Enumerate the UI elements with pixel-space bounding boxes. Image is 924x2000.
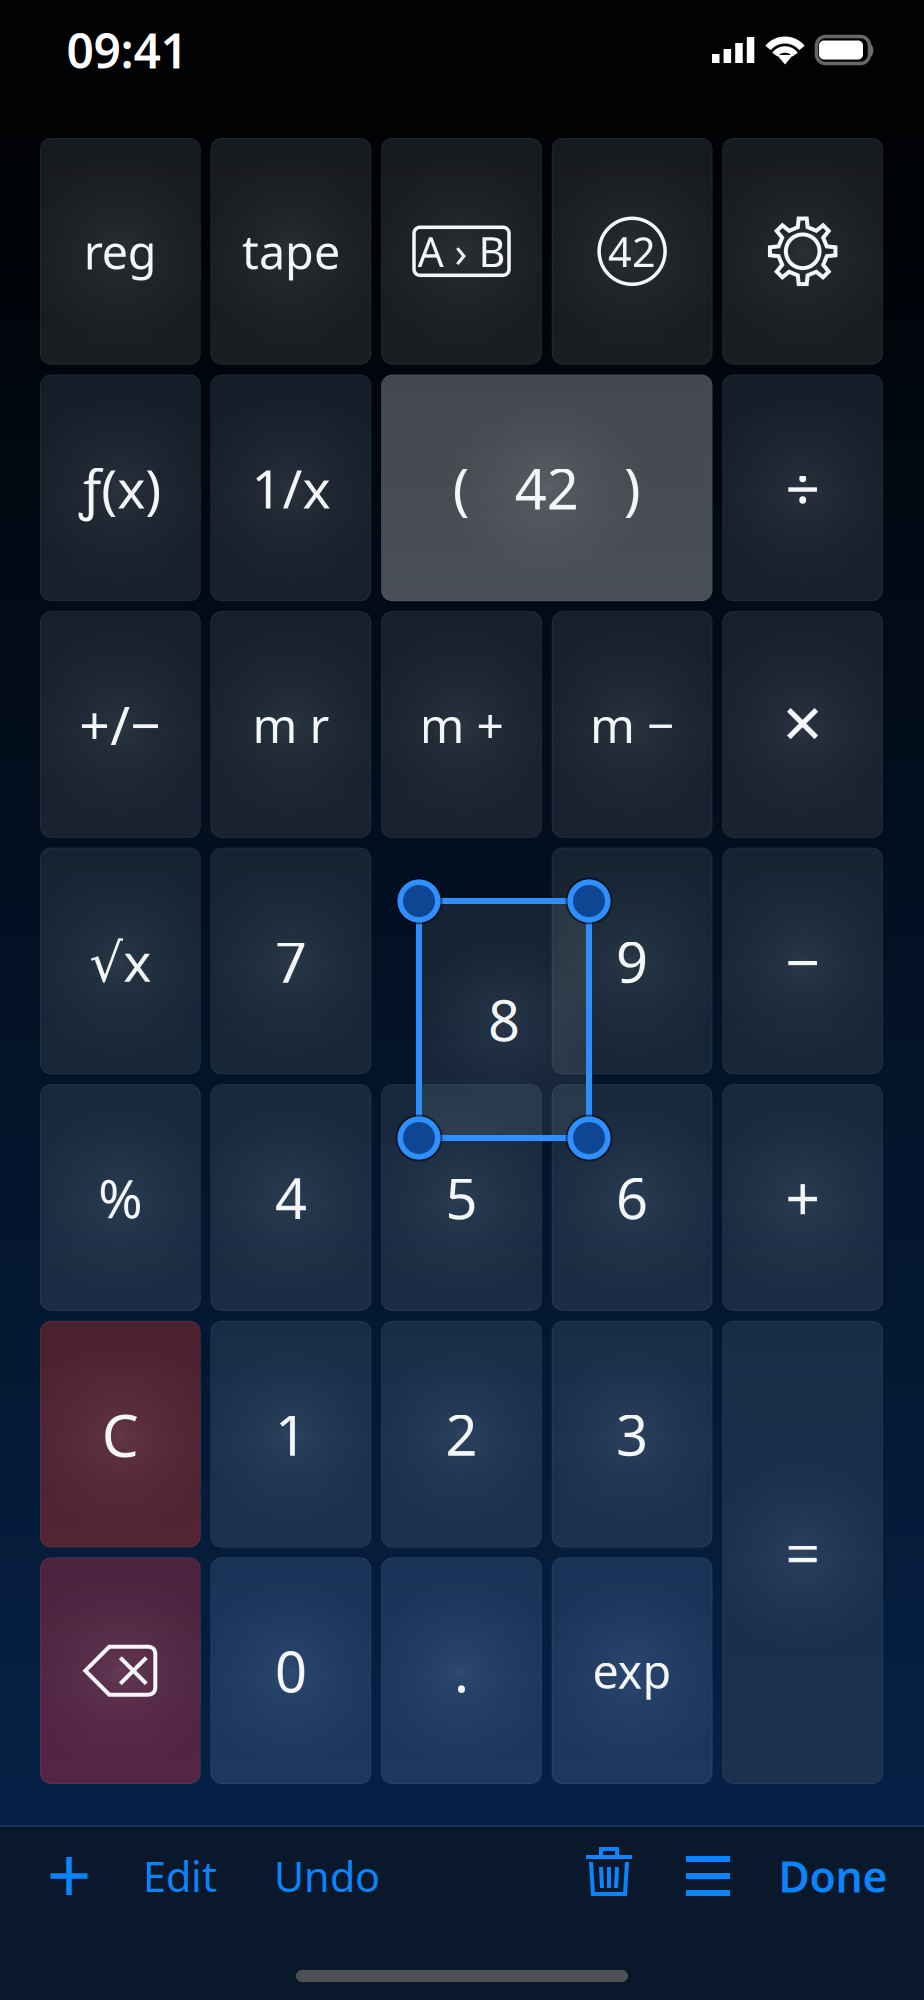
button[interactable]: exp	[552, 1557, 712, 1784]
button[interactable]: m +	[381, 611, 542, 838]
button[interactable]: A to B	[381, 138, 542, 365]
staticText: 7	[275, 924, 307, 998]
staticText: Edit	[143, 1849, 217, 1903]
button[interactable]: 7	[211, 848, 371, 1074]
staticText: exp	[593, 1640, 672, 1702]
button[interactable]: −	[722, 848, 883, 1074]
staticText: m −	[590, 693, 674, 756]
button[interactable]: 3	[552, 1321, 712, 1547]
staticText: m +	[419, 693, 503, 756]
button[interactable]: √x	[40, 848, 201, 1074]
button[interactable]: Undo	[252, 1830, 402, 1922]
button[interactable]: tape	[211, 138, 371, 365]
staticText: reg	[84, 220, 157, 282]
staticText: 0	[275, 1633, 307, 1708]
button[interactable]: 1	[211, 1321, 371, 1547]
staticText: 8	[488, 982, 520, 1057]
staticText: 4	[275, 1160, 307, 1235]
button[interactable]: Menu	[660, 1828, 756, 1924]
button[interactable]: Done	[756, 1830, 909, 1922]
button[interactable]: 42	[552, 138, 712, 365]
staticText: −	[785, 920, 820, 1002]
button[interactable]: 5	[381, 1084, 542, 1311]
button[interactable]: m r	[211, 611, 371, 838]
staticText: %	[98, 1162, 142, 1233]
button[interactable]: 0	[211, 1557, 371, 1784]
button[interactable]: Add	[23, 1830, 115, 1922]
button[interactable]: +/−	[40, 611, 201, 838]
staticText: C	[102, 1395, 139, 1473]
button[interactable]: Settings	[722, 138, 883, 365]
staticText: ƒ(x)	[79, 452, 161, 523]
button[interactable]: Multiply	[722, 611, 883, 838]
staticText: √x	[89, 926, 151, 996]
staticText: 2	[445, 1397, 477, 1471]
staticText: 1	[275, 1397, 307, 1471]
staticText: ✕	[780, 694, 825, 755]
staticText: 42	[608, 224, 656, 279]
staticText: tape	[242, 220, 340, 282]
button[interactable]: .	[381, 1557, 542, 1784]
button[interactable]: Clear	[40, 1321, 201, 1547]
button[interactable]: m −	[552, 611, 712, 838]
staticText: .	[454, 1633, 469, 1708]
staticText: +	[785, 1157, 820, 1238]
staticText: 09:41	[66, 18, 187, 82]
button[interactable]: Edit	[121, 1830, 239, 1922]
staticText: =	[785, 1512, 820, 1593]
staticText: 1/x	[251, 452, 330, 523]
staticText: ( 42 )	[453, 451, 641, 525]
button[interactable]: Delete	[561, 1826, 657, 1922]
staticText: 5	[445, 1160, 477, 1235]
staticText: 6	[616, 1160, 648, 1235]
staticText: Done	[778, 1848, 887, 1904]
button[interactable]: 6	[552, 1084, 712, 1311]
staticText: Undo	[274, 1849, 380, 1903]
button[interactable]: reg	[40, 138, 201, 365]
button[interactable]: ( 42 )	[381, 375, 712, 601]
staticText: m r	[252, 693, 329, 756]
button[interactable]: 2	[381, 1321, 542, 1547]
staticText: 3	[616, 1397, 648, 1471]
button[interactable]: ƒ(x)	[40, 375, 201, 601]
button[interactable]: Backspace	[40, 1557, 201, 1784]
button[interactable]: Equals	[722, 1321, 883, 1784]
button[interactable]: ÷	[722, 375, 883, 601]
button[interactable]: 4	[211, 1084, 371, 1311]
staticText: 9	[616, 924, 648, 998]
staticText: A › B	[417, 224, 505, 279]
staticText: ÷	[785, 447, 820, 528]
button[interactable]: 1/x	[211, 375, 371, 601]
button[interactable]: 9	[552, 848, 712, 1074]
button[interactable]: +	[722, 1084, 883, 1311]
staticText: +/−	[79, 689, 161, 760]
button[interactable]: %	[40, 1084, 201, 1311]
